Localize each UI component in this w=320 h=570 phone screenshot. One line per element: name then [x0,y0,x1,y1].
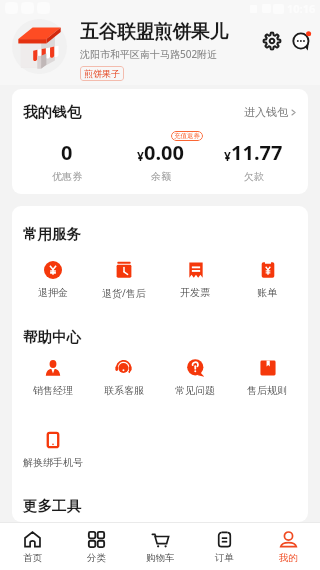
staticText: 解换绑手机号 [23,456,83,469]
staticText: 账单 [257,286,277,299]
button[interactable]: 订单 [192,530,256,564]
staticText: 更多工具 [23,497,81,515]
button[interactable]: 开发票 [159,260,231,299]
button[interactable]: 退货/售后 [88,260,159,300]
staticText: 售后规则 [247,384,287,397]
staticText: 11.77 [231,139,283,166]
staticText: 我的 [279,552,298,564]
staticText: 帮助中心 [23,328,81,346]
staticText: 退押金 [38,286,68,299]
staticText: 分类 [87,552,106,564]
staticText: 首页 [23,552,42,564]
staticText: 销售经理 [33,384,73,397]
staticText: 订单 [215,552,234,564]
staticText: 沈阳市和平区南十马路502附近 [80,47,218,61]
staticText: ¥ [137,148,144,164]
staticText: 煎饼果子 [84,68,120,79]
staticText: 五谷联盟煎饼果儿 [80,20,228,43]
button[interactable]: 0 [20,139,114,183]
button[interactable]: 销售经理 [17,358,88,397]
staticText: 0 [61,139,73,166]
button[interactable]: 退押金 [17,260,88,299]
staticText: 联系客服 [104,384,144,397]
staticText: 优惠券 [52,170,82,183]
button[interactable]: 首页 [0,530,64,564]
button[interactable]: Messages [288,27,316,55]
staticText: 充值返券 [174,132,200,140]
staticText: 进入钱包 [244,105,288,119]
staticText: 购物车 [146,552,175,564]
staticText: 余额 [151,170,171,183]
staticText: 欠款 [244,170,264,183]
button[interactable]: 售后规则 [231,358,303,397]
staticText: 0.00 [144,139,184,166]
button[interactable]: 购物车 [128,530,192,564]
button[interactable]: 常见问题 [159,358,231,397]
button[interactable]: Settings [258,27,286,55]
button[interactable]: ¥ [114,139,207,183]
staticText: 我的钱包 [23,103,81,121]
button[interactable]: 解换绑手机号 [17,430,88,469]
button[interactable]: 分类 [64,530,128,564]
button[interactable]: 联系客服 [88,358,159,397]
staticText: ¥ [224,148,231,164]
staticText: 常见问题 [175,384,215,397]
staticText: 开发票 [180,286,210,299]
button[interactable]: 进入钱包 [244,105,297,119]
button[interactable]: 我的 [256,530,320,564]
staticText: 退货/售后 [102,286,146,300]
staticText: 常用服务 [23,225,81,243]
button[interactable]: ¥ [207,139,300,183]
button[interactable]: 账单 [231,260,303,299]
